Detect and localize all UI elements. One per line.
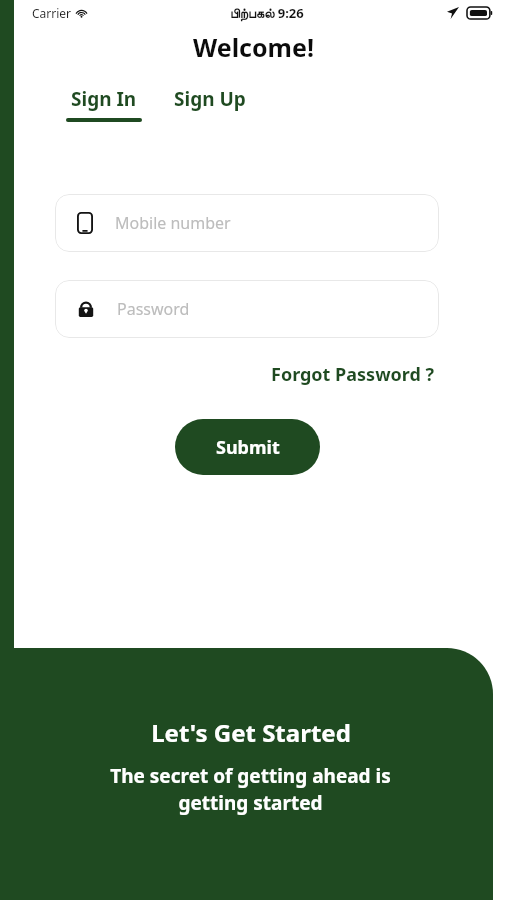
button[interactable]: Mobile number	[55, 194, 439, 252]
button[interactable]: Submit	[175, 419, 320, 475]
staticText: Sign In	[71, 86, 137, 112]
staticText: Password	[117, 298, 190, 320]
button[interactable]: Password	[55, 280, 439, 338]
staticText: Welcome!	[14, 30, 493, 64]
button[interactable]: Forgot Password ?	[267, 358, 439, 391]
staticText: பிற்பகல் 9:26	[230, 4, 304, 22]
staticText: The secret of getting ahead is getting s…	[110, 763, 391, 816]
staticText: Submit	[216, 435, 280, 460]
staticText: Sign Up	[174, 86, 246, 112]
staticText: Carrier	[32, 5, 72, 21]
button[interactable]: Sign Up	[172, 86, 248, 112]
staticText: Mobile number	[115, 212, 231, 234]
staticText: Let's Get Started	[151, 716, 351, 749]
button[interactable]: Sign In	[64, 86, 144, 122]
